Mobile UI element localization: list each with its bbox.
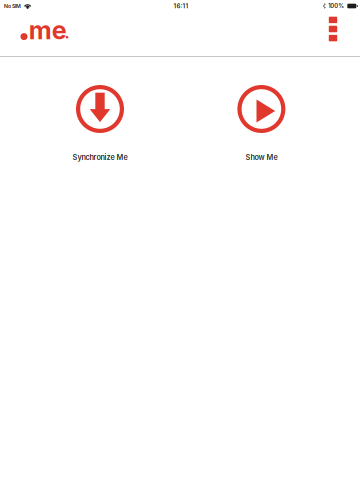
button[interactable]: .me home — [20, 15, 76, 45]
staticText: Show Me — [245, 153, 277, 162]
button[interactable]: More options — [318, 15, 348, 45]
button[interactable]: Show Me — [181, 85, 341, 162]
staticText: No SIM — [4, 3, 21, 9]
staticText: me — [29, 15, 67, 45]
staticText: 100% — [328, 2, 344, 9]
staticText: Synchronize Me — [72, 153, 127, 162]
staticText: 16:11 — [173, 2, 188, 10]
button[interactable]: Synchronize Me — [20, 85, 180, 162]
